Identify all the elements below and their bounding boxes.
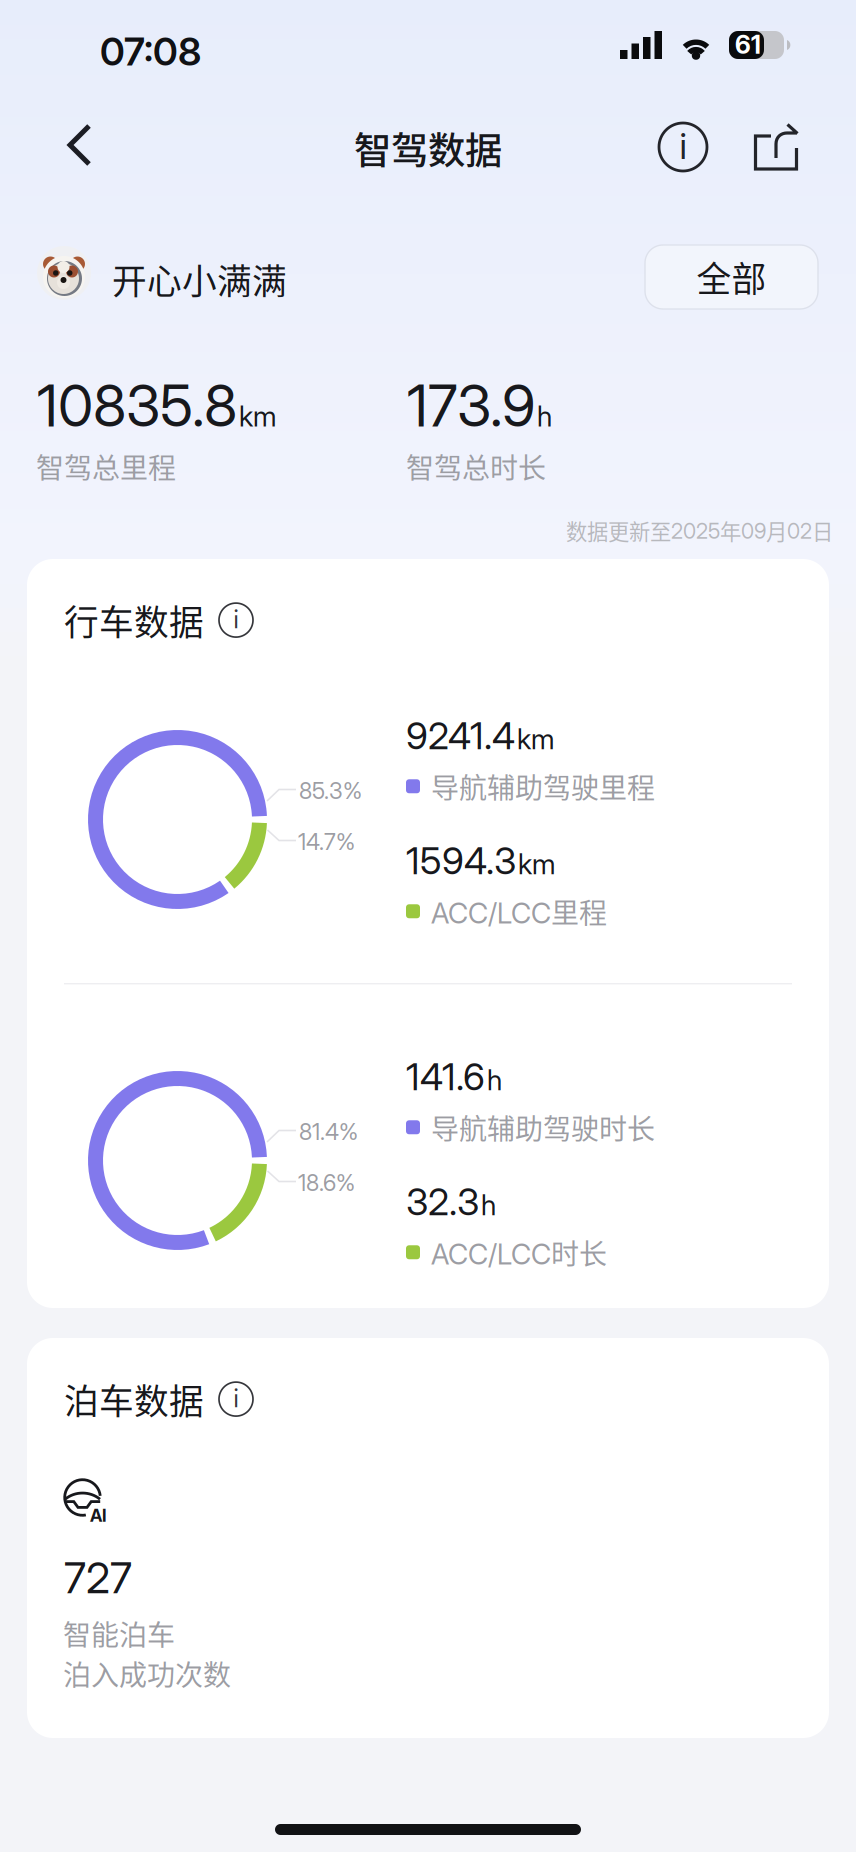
button[interactable]: Share [732,108,818,186]
staticText: h [537,399,552,433]
button[interactable]: Back [42,105,117,185]
staticText: 14.7% [298,828,355,855]
button[interactable]: Information [634,116,732,178]
staticText: i [233,604,238,634]
staticText: 导航辅助驾驶里程 [431,766,655,806]
staticText: km [518,847,555,881]
staticText: h [487,1063,502,1097]
staticText: ACC/LCC时长 [431,1232,607,1272]
staticText: 数据更新至2025年09月02日 [566,515,833,546]
staticText: km [517,722,554,756]
staticText: 81.4% [299,1118,358,1145]
staticText: 61 [735,29,761,60]
staticText: 32.3 [406,1179,479,1224]
staticText: 10835.8 [37,371,237,440]
staticText: 智驾总里程 [36,446,176,486]
staticText: 智能泊车 [63,1613,175,1653]
staticText: 泊车数据 [64,1374,204,1424]
staticText: 开心小满满 [112,254,287,304]
staticText: 导航辅助驾驶时长 [431,1107,655,1147]
staticText: 173.9 [407,371,535,440]
staticText: 智驾数据 [354,121,502,175]
staticText: 智驾总时长 [406,446,546,486]
staticText: AI [90,1505,106,1526]
staticText: 141.6 [406,1054,485,1099]
button[interactable]: About 泊车数据 [204,1377,260,1421]
staticText: km [239,399,276,433]
staticText: i [233,1383,238,1413]
staticText: h [481,1188,496,1222]
staticText: 18.6% [298,1169,355,1196]
staticText: 全部 [696,252,766,302]
staticText: 85.3% [299,777,362,804]
staticText: i [679,124,686,168]
button[interactable]: 全部 [645,245,818,309]
staticText: 泊入成功次数 [63,1653,231,1693]
staticText: 1594.3 [406,838,516,883]
staticText: ACC/LCC里程 [431,891,607,931]
staticText: 行车数据 [64,595,204,645]
staticText: 9241.4 [406,713,515,758]
staticText: 07:08 [100,28,201,75]
button[interactable]: About 行车数据 [204,598,260,642]
staticText: 727 [64,1552,132,1604]
